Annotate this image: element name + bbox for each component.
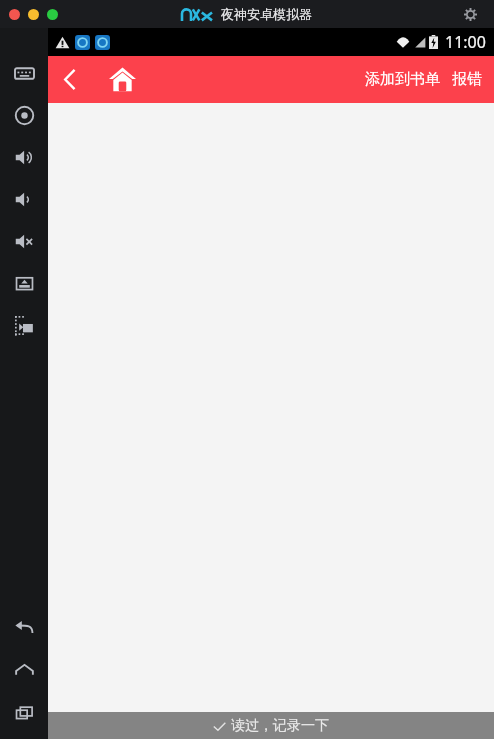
button[interactable]: Install APK <box>0 262 48 304</box>
staticText: 添加到书单 <box>365 70 440 89</box>
button[interactable]: Close <box>9 9 20 20</box>
button[interactable]: Mute <box>0 220 48 262</box>
button[interactable]: 报错 <box>446 60 488 99</box>
staticText: 11:00 <box>445 31 486 53</box>
button[interactable]: 读过，记录一下 <box>48 712 494 739</box>
button[interactable]: Recents <box>0 691 48 733</box>
button[interactable]: 添加到书单 <box>359 60 446 99</box>
button[interactable]: Keyboard <box>0 52 48 94</box>
button[interactable]: Home <box>100 56 144 103</box>
button[interactable]: Screen record <box>0 304 48 346</box>
staticText: 读过，记录一下 <box>231 717 329 735</box>
staticText: 报错 <box>452 70 482 89</box>
button[interactable]: Settings <box>460 4 480 24</box>
button[interactable]: Location <box>0 94 48 136</box>
button[interactable]: Volume up <box>0 136 48 178</box>
button[interactable]: Volume down <box>0 178 48 220</box>
button[interactable]: Back <box>0 607 48 649</box>
button[interactable]: Minimize <box>28 9 39 20</box>
button[interactable]: Maximize <box>47 9 58 20</box>
button[interactable]: Home <box>0 649 48 691</box>
staticText: 夜神安卓模拟器 <box>221 6 312 22</box>
button[interactable]: Back <box>48 56 92 103</box>
